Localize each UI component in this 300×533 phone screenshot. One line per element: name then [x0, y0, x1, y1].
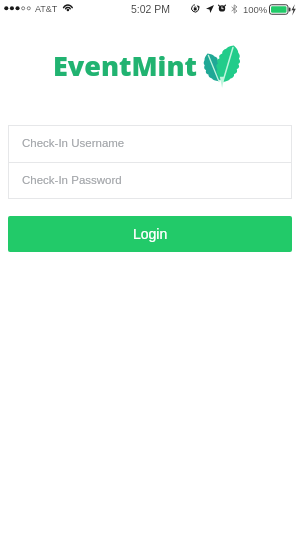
staticText: 100%	[243, 4, 268, 15]
button[interactable]: Check-In Password	[8, 162, 292, 199]
button[interactable]: Check-In Username	[8, 125, 292, 162]
staticText: 5:02 PM	[131, 3, 171, 15]
staticText: AT&T	[35, 4, 58, 14]
staticText: Check-In Username	[22, 137, 125, 150]
staticText: EventMint	[53, 47, 197, 84]
staticText: Check-In Password	[22, 174, 122, 187]
button[interactable]: Login	[8, 216, 292, 252]
staticText: Login	[133, 226, 168, 242]
